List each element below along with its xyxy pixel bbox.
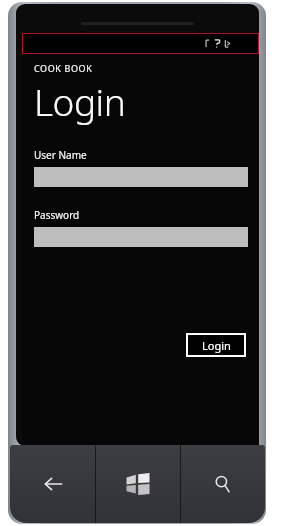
button[interactable]: Back xyxy=(10,445,95,523)
staticText: Password xyxy=(34,208,80,222)
button[interactable]: Search xyxy=(181,445,265,523)
staticText: Login xyxy=(202,338,231,353)
button[interactable]: Start xyxy=(96,445,180,523)
staticText: Login xyxy=(34,76,126,126)
staticText: User Name xyxy=(34,148,87,162)
staticText: COOK BOOK xyxy=(34,62,93,74)
button[interactable]: Login xyxy=(186,333,246,357)
